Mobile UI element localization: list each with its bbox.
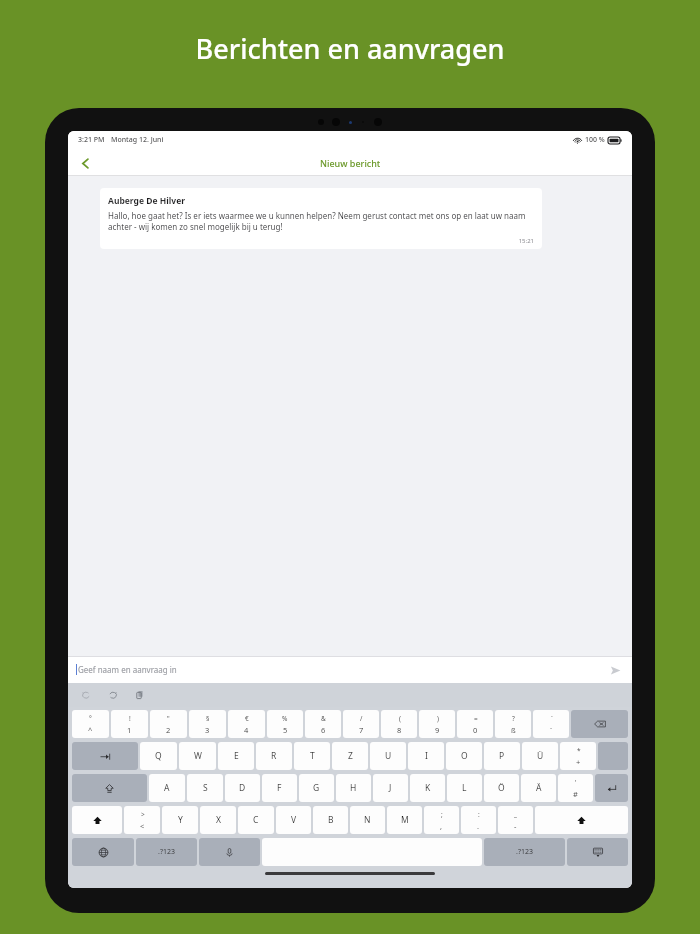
button[interactable]: Backspace	[571, 710, 628, 738]
button[interactable]: *	[560, 742, 596, 770]
staticText: (	[399, 714, 401, 723]
button[interactable]: D	[225, 774, 260, 802]
button[interactable]: Tab	[72, 742, 138, 770]
button[interactable]: (	[381, 710, 417, 738]
staticText: *	[577, 746, 581, 755]
button[interactable]: N	[350, 806, 385, 834]
staticText: K	[425, 782, 431, 794]
staticText: 15:21	[108, 237, 534, 245]
staticText: T	[310, 750, 315, 762]
button[interactable]: >	[124, 806, 160, 834]
button[interactable]: X	[200, 806, 236, 834]
button[interactable]: U	[370, 742, 406, 770]
button[interactable]: M	[387, 806, 422, 834]
button[interactable]: J	[373, 774, 408, 802]
button[interactable]: C	[238, 806, 274, 834]
button[interactable]: G	[299, 774, 334, 802]
staticText: %	[282, 714, 288, 723]
button[interactable]: Y	[162, 806, 198, 834]
button[interactable]: Hide keyboard	[567, 838, 628, 866]
staticText: 9	[435, 725, 440, 735]
button[interactable]: Paste	[131, 686, 149, 704]
button[interactable]: F	[262, 774, 297, 802]
staticText: '	[575, 778, 577, 787]
button[interactable]: P	[484, 742, 520, 770]
button[interactable]: §	[189, 710, 226, 738]
button[interactable]: I	[408, 742, 444, 770]
button[interactable]: "	[150, 710, 187, 738]
staticText: R	[271, 750, 277, 762]
staticText: V	[291, 814, 297, 826]
button[interactable]: E	[218, 742, 254, 770]
staticText: +	[576, 757, 581, 767]
staticText: .?123	[158, 847, 175, 857]
button[interactable]: A	[149, 774, 185, 802]
staticText: €	[245, 714, 249, 723]
button[interactable]: O	[446, 742, 482, 770]
button[interactable]: V	[276, 806, 311, 834]
staticText: "	[167, 714, 170, 723]
staticText: §	[206, 714, 210, 723]
button[interactable]: .?123	[484, 838, 565, 866]
button[interactable]: €	[228, 710, 265, 738]
staticText: 3:21 PM	[78, 135, 105, 145]
staticText: P	[499, 750, 505, 762]
staticText: -	[514, 821, 517, 831]
staticText: Ü	[537, 750, 544, 762]
button[interactable]: B	[313, 806, 348, 834]
staticText: Ö	[498, 782, 505, 794]
button[interactable]: Back	[72, 150, 98, 176]
button[interactable]: /	[343, 710, 379, 738]
button[interactable]: Geef naam en aanvraag in	[68, 656, 632, 683]
staticText: 6	[321, 725, 326, 735]
staticText: =	[474, 714, 478, 723]
button[interactable]: Voice input	[199, 838, 260, 866]
button[interactable]: Caps lock	[72, 774, 147, 802]
button[interactable]: =	[457, 710, 493, 738]
button[interactable]: T	[294, 742, 330, 770]
button[interactable]: Ä	[521, 774, 556, 802]
button[interactable]: ;	[424, 806, 459, 834]
staticText: _	[514, 810, 517, 819]
button[interactable]: Ö	[484, 774, 519, 802]
button[interactable]: %	[267, 710, 303, 738]
staticText: Q	[155, 750, 162, 762]
button[interactable]: `	[533, 710, 569, 738]
staticText: Geef naam en aanvraag in	[78, 664, 177, 675]
button[interactable]: Redo	[104, 686, 122, 704]
button[interactable]: Shift	[72, 806, 122, 834]
button[interactable]: '	[558, 774, 593, 802]
button[interactable]: Undo	[77, 686, 95, 704]
button[interactable]: Change keyboard language	[72, 838, 134, 866]
button[interactable]: Ü	[522, 742, 558, 770]
button[interactable]: _	[498, 806, 533, 834]
button[interactable]: Auberge De Hilver	[100, 188, 542, 249]
button[interactable]: !	[111, 710, 148, 738]
button[interactable]: Send	[606, 661, 624, 679]
staticText: >	[141, 810, 145, 819]
button[interactable]: °	[72, 710, 109, 738]
button[interactable]: L	[447, 774, 482, 802]
button[interactable]: R	[256, 742, 292, 770]
button[interactable]: Shift	[535, 806, 628, 834]
button[interactable]: W	[179, 742, 216, 770]
staticText: S	[203, 782, 208, 794]
staticText: 3	[205, 725, 210, 735]
staticText: Hallo, hoe gaat het? Is er iets waarmee …	[108, 210, 534, 232]
button[interactable]: )	[419, 710, 455, 738]
button[interactable]: ?	[495, 710, 531, 738]
staticText: Z	[348, 750, 353, 762]
staticText: G	[313, 782, 320, 794]
button[interactable]: :	[461, 806, 496, 834]
button[interactable]: S	[187, 774, 223, 802]
button[interactable]: .?123	[136, 838, 197, 866]
button[interactable]: Q	[140, 742, 177, 770]
staticText: ;	[441, 810, 443, 819]
button[interactable]: Return	[595, 774, 628, 802]
button[interactable]: H	[336, 774, 371, 802]
button[interactable]: Z	[332, 742, 368, 770]
button[interactable]: K	[410, 774, 445, 802]
button[interactable]: &	[305, 710, 341, 738]
